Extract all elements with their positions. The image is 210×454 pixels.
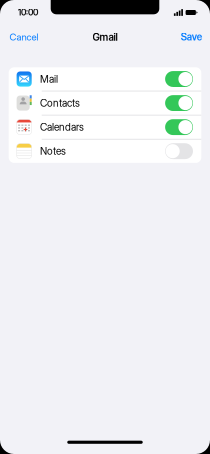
staticText: Save (181, 31, 202, 43)
staticText: Calendars (40, 121, 84, 133)
button[interactable]: Calendars (9, 115, 201, 139)
staticText: Notes (40, 145, 66, 157)
staticText: Mail (40, 73, 58, 85)
staticText: Cancel (9, 31, 38, 43)
button[interactable]: Cancel (0, 26, 47, 48)
button[interactable]: Save (172, 26, 210, 48)
button[interactable]: Mail (9, 67, 201, 91)
button[interactable]: Notes (9, 139, 201, 163)
staticText: Contacts (40, 97, 80, 109)
staticText: Gmail (92, 31, 117, 43)
button[interactable]: Contacts (9, 91, 201, 115)
staticText: 10:00 (18, 7, 38, 18)
